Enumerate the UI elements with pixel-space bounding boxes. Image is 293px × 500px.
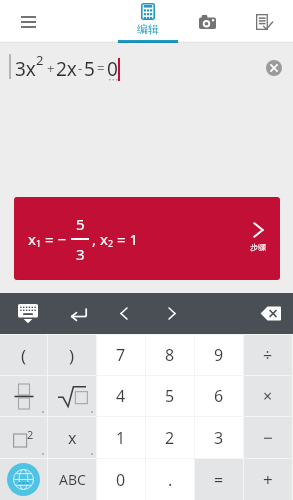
button[interactable]: ×	[244, 376, 292, 416]
staticText: 9	[214, 344, 224, 366]
button[interactable]: x	[48, 417, 96, 458]
button[interactable]: .	[146, 459, 194, 500]
button[interactable]: Hide keyboard	[6, 293, 50, 334]
button[interactable]: 编辑	[118, 0, 178, 43]
button[interactable]: −	[244, 417, 292, 458]
button[interactable]: Previous	[102, 293, 146, 334]
staticText: 2x	[56, 56, 77, 82]
staticText: 5	[165, 385, 175, 407]
button[interactable]: (	[0, 335, 47, 375]
staticText: 编辑	[137, 22, 159, 36]
staticText: ×	[263, 385, 273, 407]
button[interactable]: 5	[146, 376, 194, 416]
staticText: -	[78, 59, 83, 77]
button[interactable]: Notes	[242, 0, 286, 43]
staticText: (	[21, 344, 27, 367]
button[interactable]: 0	[97, 459, 145, 500]
staticText: +	[47, 59, 55, 77]
staticText: 0	[116, 469, 126, 491]
button[interactable]: 7	[97, 335, 145, 375]
staticText: x	[100, 229, 108, 249]
button[interactable]: 2	[146, 417, 194, 458]
staticText: = 1	[117, 229, 139, 249]
staticText: −	[263, 426, 273, 449]
button[interactable]: Camera	[185, 0, 229, 43]
button[interactable]: Enter	[56, 293, 100, 334]
staticText: 4	[116, 385, 126, 407]
button[interactable]: 3	[195, 417, 243, 458]
button[interactable]: Menu	[6, 0, 50, 43]
staticText: 步骤	[250, 242, 266, 252]
button[interactable]: 9	[195, 335, 243, 375]
button[interactable]: ABC	[48, 459, 96, 500]
button[interactable]: =	[195, 459, 243, 500]
staticText: 5	[76, 214, 85, 234]
button[interactable]: Backspace	[248, 293, 292, 334]
staticText: 1	[36, 237, 42, 249]
staticText: 1	[116, 427, 126, 449]
staticText: =	[97, 59, 105, 77]
button[interactable]: Square root	[48, 376, 96, 416]
staticText: 3	[76, 244, 85, 264]
button[interactable]: +	[244, 459, 292, 500]
button[interactable]: 1	[97, 417, 145, 458]
button[interactable]: )	[48, 335, 96, 375]
staticText: ÷	[263, 344, 273, 366]
staticText: 3x	[15, 56, 36, 82]
button[interactable]: 4	[97, 376, 145, 416]
staticText: 3	[214, 427, 224, 449]
staticText: = −	[45, 229, 67, 249]
staticText: 0	[107, 56, 118, 82]
staticText: 6	[214, 385, 224, 407]
staticText: .	[168, 469, 173, 491]
staticText: 8	[165, 344, 175, 366]
staticText: )	[69, 344, 75, 367]
button[interactable]: Square	[0, 417, 47, 458]
button[interactable]: Change language	[0, 459, 47, 500]
staticText: 5	[84, 56, 95, 82]
button[interactable]: 6	[195, 376, 243, 416]
staticText: 2	[27, 427, 34, 442]
staticText: x	[28, 229, 36, 249]
button[interactable]: Fraction	[0, 376, 47, 416]
staticText: +	[263, 468, 273, 491]
button[interactable]: Clear	[258, 44, 290, 92]
staticText: ,	[92, 229, 97, 249]
staticText: 7	[116, 344, 126, 366]
button[interactable]: x	[14, 197, 280, 280]
staticText: x	[68, 427, 77, 449]
staticText: ABC	[59, 470, 86, 489]
button[interactable]: 8	[146, 335, 194, 375]
staticText: =	[214, 469, 224, 491]
button[interactable]: Next	[150, 293, 194, 334]
staticText: 2	[36, 51, 44, 69]
staticText: 2	[108, 237, 114, 249]
button[interactable]: ÷	[244, 335, 292, 375]
staticText: 2	[165, 427, 175, 449]
